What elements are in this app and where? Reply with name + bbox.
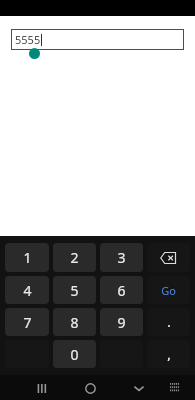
staticText: 2 <box>70 248 79 267</box>
button[interactable]: Change keyboard <box>165 378 185 398</box>
button[interactable]: 4 <box>5 276 49 304</box>
staticText: 8 <box>70 313 79 332</box>
staticText: Go <box>161 283 176 298</box>
button[interactable]: Go <box>147 276 190 304</box>
staticText: 0 <box>70 345 79 364</box>
button[interactable]: 1 <box>5 243 49 272</box>
staticText: 4 <box>23 281 32 300</box>
staticText: 6 <box>117 281 126 300</box>
button[interactable]: 0 <box>53 340 96 368</box>
staticText: 7 <box>23 313 32 332</box>
button[interactable]: Recents <box>30 376 54 400</box>
staticText: 3 <box>117 248 126 267</box>
button[interactable]: 3 <box>100 243 143 272</box>
button[interactable]: 5 <box>53 276 96 304</box>
staticText: , <box>167 345 171 363</box>
button[interactable]: 6 <box>100 276 143 304</box>
staticText: 5 <box>70 281 79 300</box>
staticText: 9 <box>117 313 126 332</box>
button[interactable]: Backspace <box>147 243 190 272</box>
button[interactable]: 9 <box>100 308 143 336</box>
button[interactable]: 5555 <box>11 29 184 50</box>
button[interactable]: 2 <box>53 243 96 272</box>
staticText: . <box>167 313 171 331</box>
button[interactable]: Home <box>78 376 102 400</box>
button[interactable]: , <box>147 340 190 368</box>
button[interactable]: 7 <box>5 308 49 336</box>
staticText: 1 <box>23 248 32 267</box>
button[interactable]: 8 <box>53 308 96 336</box>
button[interactable]: Hide keyboard <box>127 376 151 400</box>
staticText: 5555 <box>15 32 41 47</box>
button[interactable]: . <box>147 308 190 336</box>
